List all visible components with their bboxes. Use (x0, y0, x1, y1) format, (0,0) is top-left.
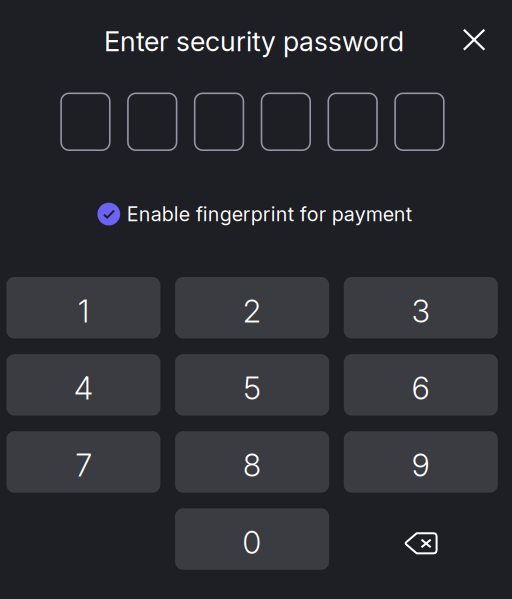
button[interactable]: 4 (6, 354, 160, 416)
staticText: 4 (74, 370, 93, 407)
button[interactable]: 7 (6, 431, 160, 493)
staticText: 9 (412, 447, 430, 484)
button[interactable]: Enable fingerprint for payment (97, 202, 412, 226)
button[interactable]: Close (451, 17, 497, 63)
staticText: 0 (243, 524, 262, 561)
staticText: 8 (243, 447, 261, 484)
button[interactable]: 1 (6, 277, 160, 338)
staticText: Enter security password (104, 25, 404, 58)
staticText: 6 (412, 370, 430, 407)
staticText: 5 (244, 370, 261, 407)
button[interactable]: Delete (344, 508, 498, 570)
button[interactable]: 3 (344, 277, 498, 338)
staticText: 1 (78, 293, 89, 330)
button[interactable]: 2 (175, 277, 329, 338)
button[interactable]: 0 (175, 508, 329, 570)
button[interactable]: 6 (344, 354, 498, 416)
staticText: 2 (243, 293, 261, 330)
button[interactable]: 9 (344, 431, 498, 493)
staticText: 7 (75, 447, 91, 484)
staticText: 3 (412, 293, 430, 330)
staticText: Enable fingerprint for payment (127, 202, 412, 226)
button[interactable]: 8 (175, 431, 329, 493)
button[interactable]: 5 (175, 354, 329, 416)
